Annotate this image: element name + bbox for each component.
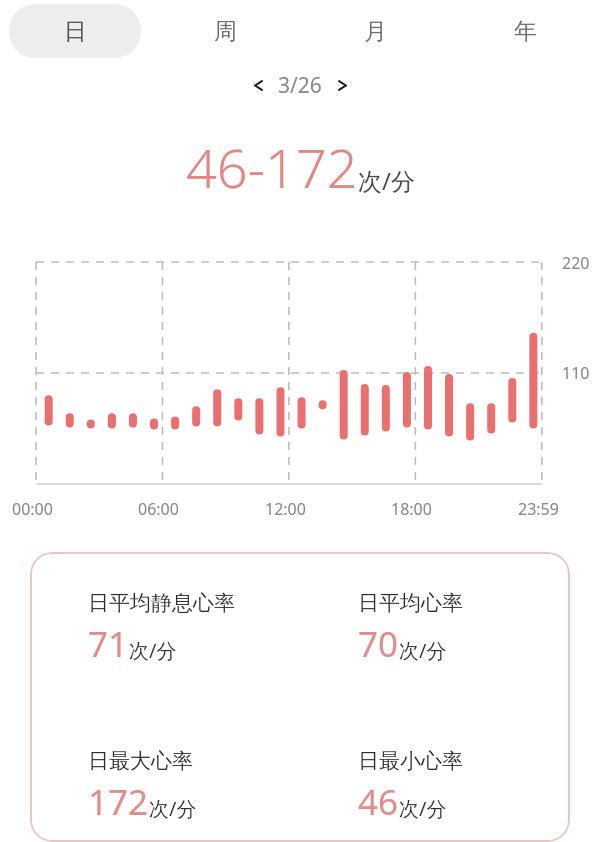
- button[interactable]: 周: [159, 4, 291, 58]
- staticText: 月: [364, 17, 387, 46]
- button[interactable]: Next day: [327, 70, 357, 100]
- staticText: 次/分: [129, 637, 177, 664]
- staticText: 71: [88, 620, 129, 668]
- staticText: 70: [358, 620, 399, 668]
- button[interactable]: 日最大心率: [88, 748, 300, 826]
- staticText: 06:00: [138, 498, 179, 520]
- staticText: 46: [358, 778, 399, 826]
- staticText: 日最小心率: [358, 748, 463, 774]
- staticText: 110: [562, 362, 590, 384]
- staticText: 次/分: [358, 164, 415, 197]
- staticText: 172: [88, 778, 149, 826]
- staticText: 18:00: [391, 498, 432, 520]
- staticText: 46-172: [186, 130, 358, 204]
- staticText: 日平均静息心率: [88, 590, 235, 616]
- staticText: 次/分: [399, 637, 447, 664]
- button[interactable]: 日平均静息心率: [30, 552, 570, 842]
- staticText: 3/26: [278, 71, 322, 100]
- staticText: 220: [562, 252, 590, 274]
- button[interactable]: 日: [9, 4, 141, 58]
- button[interactable]: 日平均心率: [358, 590, 570, 668]
- button[interactable]: 月: [309, 4, 441, 58]
- staticText: 周: [214, 17, 237, 46]
- staticText: 次/分: [149, 795, 197, 822]
- staticText: 00:00: [12, 498, 53, 520]
- staticText: 日平均心率: [358, 590, 463, 616]
- staticText: 日: [64, 17, 87, 46]
- button[interactable]: Previous day: [243, 70, 273, 100]
- staticText: 日最大心率: [88, 748, 193, 774]
- staticText: 年: [514, 17, 537, 46]
- staticText: 次/分: [399, 795, 447, 822]
- staticText: 23:59: [518, 498, 559, 520]
- button[interactable]: 日最小心率: [358, 748, 570, 826]
- button[interactable]: 年: [459, 4, 591, 58]
- staticText: 12:00: [265, 498, 306, 520]
- button[interactable]: 日平均静息心率: [88, 590, 300, 668]
